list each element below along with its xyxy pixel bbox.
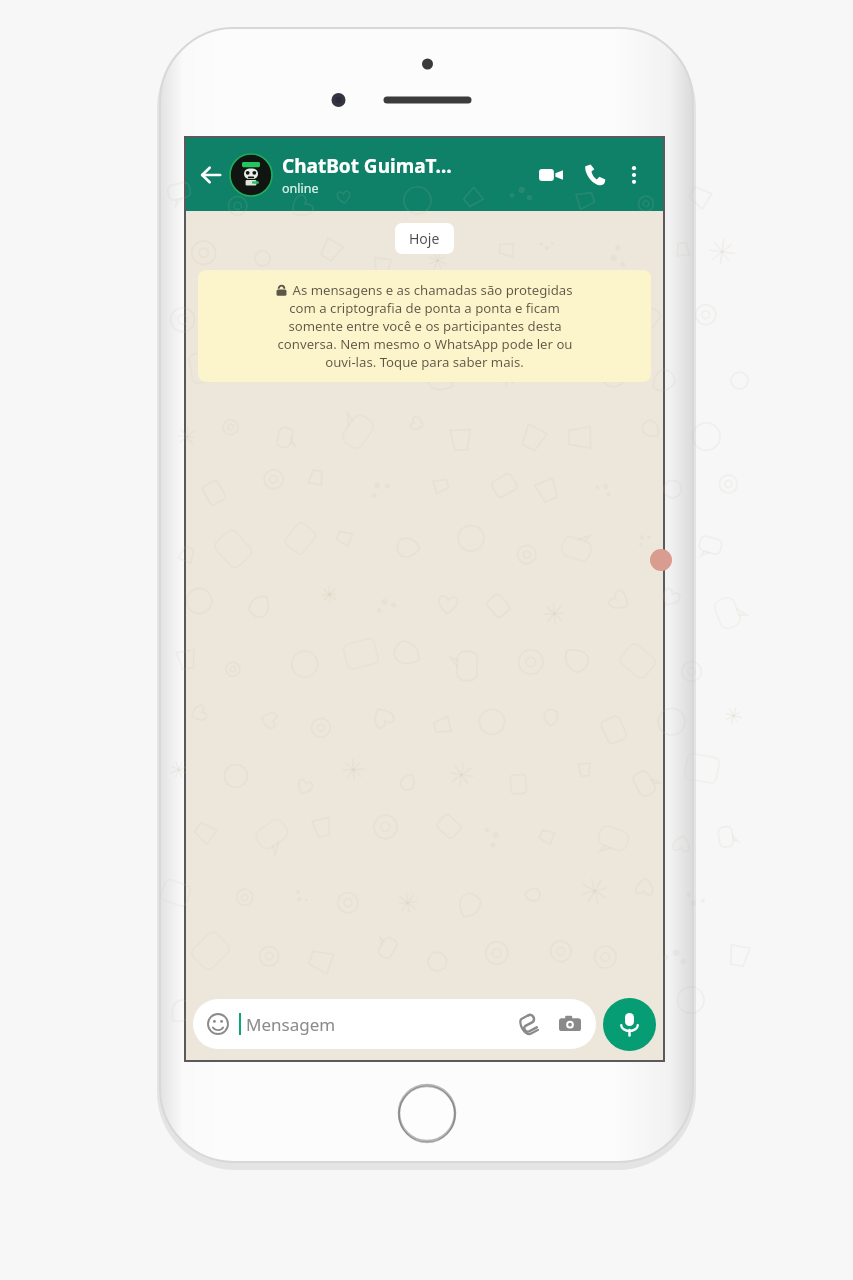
button[interactable]: ChatBot GuimaT…: [230, 138, 533, 211]
button[interactable]: More options: [617, 158, 651, 192]
staticText: As mensagens e as chamadas são protegida…: [292, 281, 573, 299]
button[interactable]: As mensagens e as chamadas são protegida…: [198, 270, 651, 382]
staticText: conversa. Nem mesmo o WhatsApp pode ler …: [277, 335, 573, 353]
staticText: online: [282, 180, 319, 197]
button[interactable]: Call: [577, 157, 613, 193]
staticText: ChatBot GuimaT…: [282, 153, 452, 179]
staticText: somente entre você e os participantes de…: [288, 317, 562, 335]
button[interactable]: Attach: [513, 1009, 543, 1039]
button[interactable]: Hoje: [395, 223, 454, 254]
button[interactable]: Camera: [555, 1009, 585, 1039]
staticText: ouvi-las. Toque para saber mais.: [325, 353, 524, 371]
button[interactable]: Emoji: [204, 1010, 232, 1038]
staticText: Mensagem: [246, 1013, 336, 1036]
staticText: com a criptografia de ponta a ponta e fi…: [289, 299, 560, 317]
button[interactable]: Record voice message: [603, 998, 656, 1051]
staticText: Hoje: [409, 229, 440, 248]
button[interactable]: Emoji: [193, 999, 596, 1049]
button[interactable]: Video call: [533, 157, 569, 193]
button[interactable]: Back: [194, 158, 228, 192]
